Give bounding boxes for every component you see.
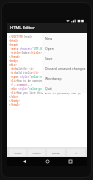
button[interactable]: Recent apps xyxy=(64,157,76,166)
staticText: Discard unsaved changes xyxy=(45,66,86,71)
staticText: <!DOCTYPE html> xyxy=(9,35,33,39)
staticText: Wordwrap xyxy=(45,76,62,81)
staticText: <li>How to be awesome</li> xyxy=(9,79,52,83)
button[interactable]: Discard unsaved changes xyxy=(42,63,87,73)
button[interactable]: <> xyxy=(67,149,85,156)
button[interactable]: Quit xyxy=(42,83,87,93)
button[interactable]: &nbsp; xyxy=(47,149,65,156)
staticText: <> xyxy=(75,151,78,154)
staticText: <b>bold</b> <i> xyxy=(9,67,34,71)
staticText: </head> xyxy=(9,55,20,59)
staticText: </html> xyxy=(9,103,20,107)
staticText: <meta charset="UTF-8"> xyxy=(9,47,45,51)
button[interactable]: New xyxy=(42,33,87,43)
staticText: <div style="color:green" >You can be awe… xyxy=(9,87,78,91)
staticText: <i>bold italic</i> xyxy=(9,71,39,75)
button[interactable]: Home xyxy=(41,157,53,166)
button[interactable]: </html> xyxy=(28,149,45,156)
staticText: HTML Editor xyxy=(10,25,35,31)
staticText: <!--comment--> xyxy=(9,83,33,87)
button[interactable]: Wordwrap xyxy=(42,73,87,83)
staticText: <html> xyxy=(9,39,19,43)
staticText: <div> xyxy=(9,63,17,67)
staticText: Open xyxy=(45,46,54,51)
staticText: <html> xyxy=(14,151,22,154)
button[interactable]: Save xyxy=(42,53,87,63)
staticText: </html> xyxy=(32,151,41,154)
staticText: New xyxy=(45,36,53,41)
button[interactable]: <html> xyxy=(9,149,26,156)
staticText: <title>Index</title> xyxy=(9,51,42,55)
button[interactable]: Back xyxy=(18,157,30,166)
staticText: </body> xyxy=(9,99,20,103)
staticText: <span style="color:red" xyxy=(9,75,47,79)
staticText: </div> xyxy=(9,95,19,99)
staticText: <head> xyxy=(9,43,19,47)
staticText: <body> xyxy=(9,59,19,63)
staticText: Quit xyxy=(45,86,52,91)
button[interactable]: Open xyxy=(42,43,87,53)
staticText: &nbsp; xyxy=(52,151,60,154)
staticText: Save xyxy=(45,56,53,61)
staticText: <li>How you live this week is probably h… xyxy=(9,91,81,95)
